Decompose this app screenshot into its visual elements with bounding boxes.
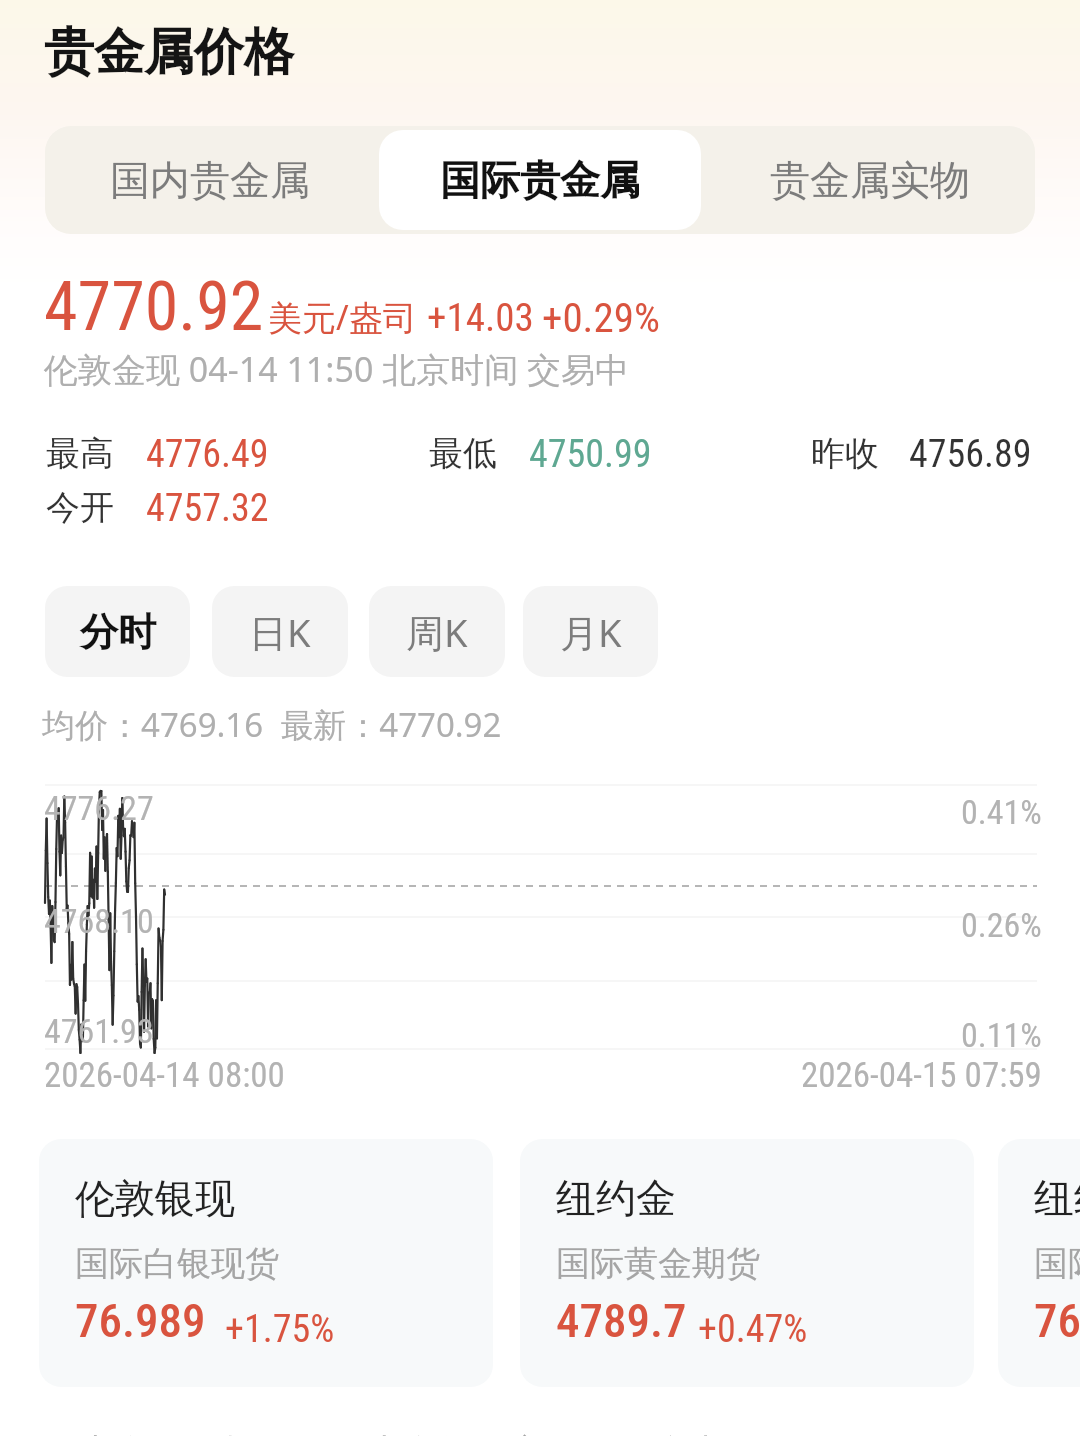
staticText: 4770.92 <box>44 267 264 347</box>
staticText: 国际白银期货 <box>1034 1242 1080 1285</box>
staticText: 分时 <box>80 608 156 656</box>
staticText: 周K <box>406 606 468 658</box>
staticText: 贵金属价格 <box>44 21 294 84</box>
staticText: 4757.32 <box>146 486 269 531</box>
staticText: +0.29% <box>542 294 660 342</box>
staticText: 最高 <box>46 432 114 475</box>
staticText: 4756.89 <box>909 432 1032 477</box>
staticText: +0.47% <box>698 1307 808 1352</box>
button[interactable]: 纽约银 <box>998 1139 1080 1387</box>
staticText: 最低 <box>429 432 497 475</box>
staticText: 4768.10 <box>44 901 154 941</box>
staticText: 日K <box>249 606 311 658</box>
staticText: +1.75% <box>225 1307 335 1352</box>
staticText: 国际贵金属 <box>440 155 640 205</box>
staticText: 国际黄金期货 <box>556 1242 760 1285</box>
button[interactable]: 周K <box>369 586 505 677</box>
button[interactable]: 月K <box>523 586 658 677</box>
staticText: 伦敦银现 <box>75 1173 235 1223</box>
staticText: 贵金属实物 <box>770 155 970 205</box>
button[interactable]: 贵金属实物 <box>709 130 1031 230</box>
staticText: 均价：4769.16 最新：4770.92 <box>42 702 502 747</box>
staticText: 纽约金 <box>556 1173 676 1223</box>
staticText: 纽约银 <box>1034 1173 1080 1223</box>
staticText: 76.989 <box>75 1293 206 1348</box>
button[interactable]: 分时 <box>45 586 190 677</box>
button[interactable]: 伦敦银现 <box>39 1139 493 1387</box>
staticText: 0.11% <box>961 1015 1042 1055</box>
staticText: 贵金属价格，数据来自第三方，仅供参考 <box>78 1430 726 1436</box>
staticText: 4789.7 <box>556 1293 687 1348</box>
button[interactable]: 纽约金 <box>520 1139 974 1387</box>
staticText: 76.86 <box>1034 1293 1080 1348</box>
button[interactable]: 国际贵金属 <box>379 130 701 230</box>
staticText: 2026-04-15 07:59 <box>801 1055 1042 1096</box>
staticText: 伦敦金现 04-14 11:50 北京时间 交易中 <box>44 346 630 392</box>
staticText: 美元/盎司 <box>268 294 417 340</box>
staticText: 2026-04-14 08:00 <box>44 1055 285 1096</box>
button[interactable]: 国内贵金属 <box>49 130 371 230</box>
staticText: 4776.27 <box>44 788 154 828</box>
staticText: +14.03 <box>427 295 534 341</box>
staticText: 4761.93 <box>44 1011 154 1051</box>
staticText: 今开 <box>46 486 114 529</box>
staticText: 0.26% <box>961 905 1042 945</box>
staticText: 0.41% <box>961 792 1042 832</box>
button[interactable]: 日K <box>212 586 348 677</box>
staticText: 昨收 <box>811 432 879 475</box>
staticText: 月K <box>560 606 622 658</box>
staticText: 国际白银现货 <box>75 1242 279 1285</box>
staticText: 国内贵金属 <box>110 155 310 205</box>
staticText: 4750.99 <box>529 432 652 477</box>
staticText: 4776.49 <box>146 432 269 477</box>
